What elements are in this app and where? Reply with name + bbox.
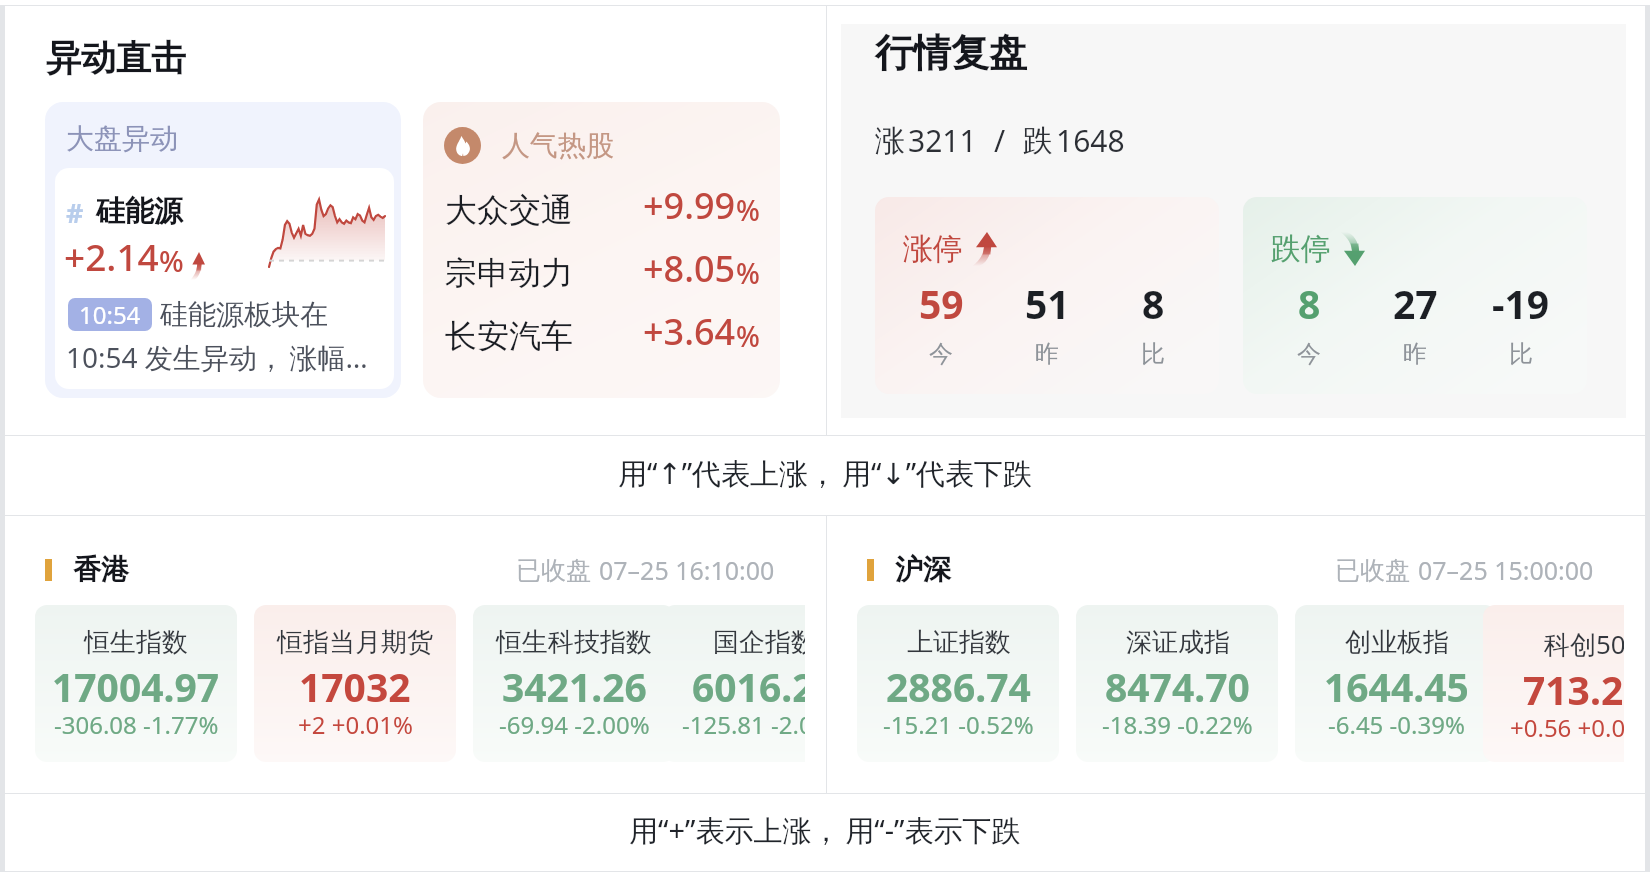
staticText: 科创50 [1544,626,1624,662]
staticText: 创业板指 [1345,626,1449,659]
staticText: 用“↑”代表上涨， 用“↓”代表下跌 [618,453,1033,493]
button[interactable]: 涨停 [875,197,1219,394]
staticText: 3421.26 [502,660,647,713]
staticText: % [736,191,760,229]
staticText: +2.14 [64,231,159,281]
staticText: 8 [1142,277,1165,330]
staticText: 硅能源 [96,193,183,230]
staticText: # [66,194,84,231]
button[interactable]: 跌停 [1243,197,1587,394]
staticText: 跌停 [1271,230,1331,268]
staticText: % [736,254,760,292]
button[interactable]: 大盘异动 [45,102,401,398]
staticText: / [994,120,1006,161]
staticText: 上证指数 [907,626,1011,659]
staticText: 宗申动力 [445,253,573,293]
staticText: 17032 [299,660,411,713]
staticText: 异动直击 [46,36,186,80]
staticText: -125.81 -2.05% [682,708,805,741]
staticText: 713.25 [1523,663,1624,716]
staticText: % [736,317,760,355]
staticText: 硅能源板块在 [160,297,328,332]
staticText: 17004.97 [52,660,220,713]
staticText: % [159,241,184,280]
staticText: 恒指当月期货 [277,626,433,659]
staticText: 用“+”表示上涨， 用“-”表示下跌 [629,810,1021,850]
staticText: 10:54 发生异动， 涨幅… [66,338,368,376]
staticText: 行情复盘 [875,29,1027,77]
staticText: 今 [929,339,953,369]
button[interactable]: 恒生科技指数 [473,605,675,762]
staticText: -69.94 -2.00% [499,708,650,741]
staticText: 比 [1141,339,1165,369]
button[interactable]: 国企指数 [663,605,805,762]
staticText: +2 +0.01% [298,708,413,741]
staticText: 香港 [73,552,129,587]
staticText: 大盘异动 [66,121,178,156]
staticText: -18.39 -0.22% [1102,708,1253,741]
staticText: 3211 [908,120,977,161]
staticText: 涨 [875,122,905,160]
button[interactable]: 科创50 [1483,605,1624,762]
staticText: 比 [1509,339,1533,369]
staticText: 8 [1298,277,1321,330]
staticText: 涨停 [903,230,963,268]
staticText: 人气热股 [502,128,614,163]
staticText: 6016.21 [692,660,805,713]
staticText: +0.56 +0.08% [1510,711,1624,744]
staticText: 深证成指 [1126,626,1230,659]
staticText: +8.05 [643,244,736,293]
staticText: 大众交通 [445,190,573,230]
staticText: 27 [1393,277,1438,330]
staticText: 已收盘 [516,555,591,586]
staticText: 今 [1297,339,1321,369]
staticText: 跌 [1023,122,1053,160]
staticText: 沪深 [895,552,951,587]
staticText: 已收盘 [1335,555,1410,586]
staticText: 长安汽车 [445,316,573,356]
staticText: -15.21 -0.52% [883,708,1034,741]
staticText: 国企指数 [713,626,805,659]
staticText: 1648 [1056,120,1125,161]
staticText: +3.64 [643,307,736,356]
staticText: -306.08 -1.77% [54,708,219,741]
staticText: 1644.45 [1324,660,1469,713]
staticText: 51 [1025,277,1070,330]
staticText: 恒生科技指数 [496,626,652,659]
staticText: +9.99 [643,181,736,230]
button[interactable]: 恒生指数 [35,605,237,762]
staticText: 07–25 15:00:00 [1418,553,1594,587]
button[interactable]: 创业板指 [1295,605,1497,762]
button[interactable]: 人气热股 [423,102,780,398]
button[interactable]: 上证指数 [857,605,1059,762]
staticText: -19 [1492,277,1550,330]
staticText: 昨 [1403,339,1427,369]
staticText: 10:54 [79,298,141,331]
button[interactable]: 深证成指 [1076,605,1278,762]
staticText: 昨 [1035,339,1059,369]
staticText: 2886.74 [886,660,1031,713]
button[interactable]: 恒指当月期货 [254,605,456,762]
staticText: 8474.70 [1105,660,1250,713]
staticText: 07–25 16:10:00 [599,553,775,587]
staticText: 恒生指数 [84,626,188,659]
staticText: 59 [919,277,964,330]
staticText: -6.45 -0.39% [1328,708,1465,741]
